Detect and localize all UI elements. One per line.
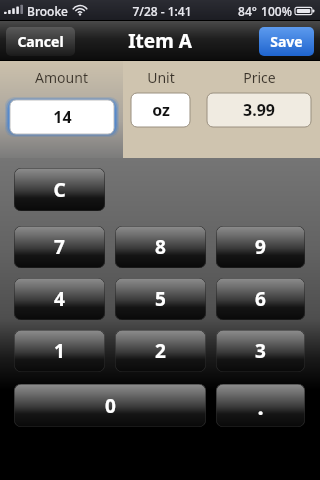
staticText: 14 xyxy=(53,106,72,128)
button[interactable]: 5 xyxy=(115,278,206,320)
staticText: 6 xyxy=(255,286,266,312)
staticText: C xyxy=(53,177,66,203)
staticText: . xyxy=(257,391,264,421)
staticText: 0 xyxy=(105,393,116,419)
button[interactable]: C xyxy=(14,168,105,211)
staticText: 100% xyxy=(261,3,292,19)
staticText: 2 xyxy=(155,338,166,364)
staticText: 84° xyxy=(238,3,257,19)
button[interactable]: 1 xyxy=(14,330,105,372)
staticText: Brooke xyxy=(27,3,68,19)
button[interactable]: 6 xyxy=(216,278,305,320)
button[interactable]: . xyxy=(216,384,305,427)
staticText: 8 xyxy=(155,234,166,260)
staticText: Cancel xyxy=(17,32,64,51)
staticText: 4 xyxy=(54,286,65,312)
staticText: 9 xyxy=(255,234,266,260)
button[interactable]: 4 xyxy=(14,278,105,320)
staticText: Price xyxy=(243,68,276,87)
staticText: 3 xyxy=(255,338,266,364)
button[interactable]: 3 xyxy=(216,330,305,372)
staticText: 3.99 xyxy=(243,99,275,121)
button[interactable]: 8 xyxy=(115,226,206,268)
button[interactable]: Save xyxy=(259,27,314,56)
staticText: 5 xyxy=(155,286,166,312)
staticText: 7 xyxy=(54,234,65,260)
staticText: Item A xyxy=(128,28,192,54)
button[interactable]: 7 xyxy=(14,226,105,268)
button[interactable]: 0 xyxy=(14,384,206,427)
button[interactable]: Amount xyxy=(0,61,123,158)
staticText: Save xyxy=(270,32,303,51)
button[interactable]: 2 xyxy=(115,330,206,372)
button[interactable]: Price xyxy=(198,61,320,158)
staticText: Unit xyxy=(147,68,175,87)
button[interactable]: Unit xyxy=(123,61,198,158)
button[interactable]: Cancel xyxy=(6,27,75,56)
staticText: 7/28 - 1:41 xyxy=(132,3,192,19)
staticText: oz xyxy=(152,99,170,121)
staticText: 1 xyxy=(54,338,65,364)
button[interactable]: 9 xyxy=(216,226,305,268)
staticText: Amount xyxy=(35,68,88,87)
